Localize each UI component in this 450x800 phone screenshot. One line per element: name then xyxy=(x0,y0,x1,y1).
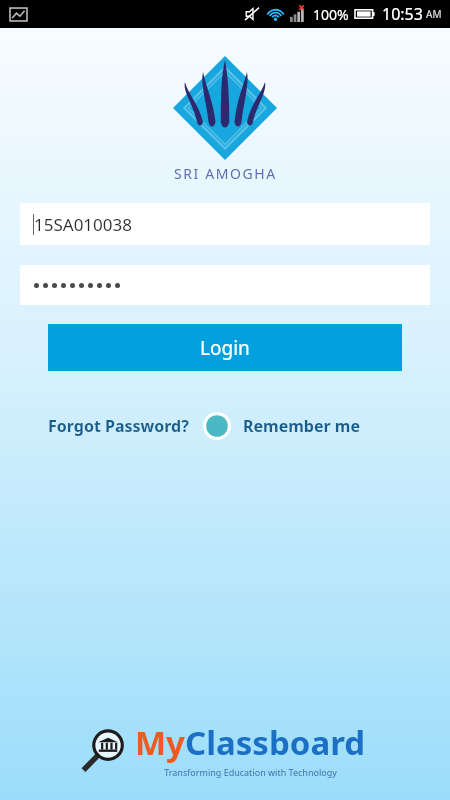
staticText: SRI AMOGHA xyxy=(174,164,277,183)
staticText: Remember me xyxy=(243,415,360,437)
staticText: Login xyxy=(200,335,250,361)
staticText: Forgot Password? xyxy=(48,415,189,437)
button[interactable]: Remember me checkbox xyxy=(203,412,231,440)
staticText: My xyxy=(135,720,185,765)
button[interactable] xyxy=(20,265,430,305)
button[interactable]: Login xyxy=(48,324,402,371)
staticText: 10:53 xyxy=(382,3,423,25)
staticText: 15SA010038 xyxy=(34,213,132,236)
button[interactable]: Forgot Password? xyxy=(48,415,189,437)
staticText: Transforming Education with Technology xyxy=(164,766,337,778)
staticText: 100% xyxy=(313,5,349,24)
other: MyClassboard xyxy=(85,720,366,778)
button[interactable]: Remember me xyxy=(243,415,360,437)
staticText: AM xyxy=(426,7,442,21)
button[interactable]: 15SA010038 xyxy=(20,203,430,245)
staticText: Classboard xyxy=(185,720,366,765)
